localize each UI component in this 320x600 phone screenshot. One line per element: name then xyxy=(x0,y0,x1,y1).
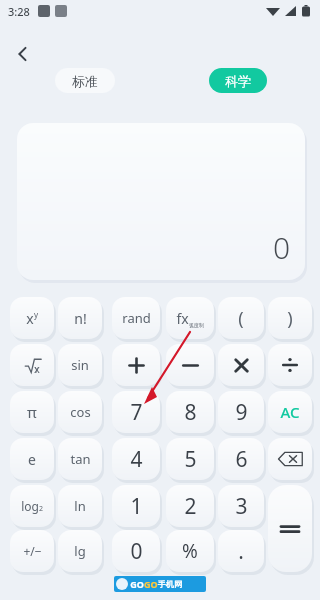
staticText: x xyxy=(34,361,40,376)
button[interactable]: cos xyxy=(58,391,102,433)
staticText: % xyxy=(182,538,198,564)
button[interactable]: Multiply xyxy=(218,344,264,386)
staticText: 科学 xyxy=(225,73,251,89)
button[interactable]: ( xyxy=(218,297,264,339)
staticText: 5 xyxy=(184,445,197,474)
button[interactable]: Divide xyxy=(268,344,312,386)
staticText: 2 xyxy=(39,504,44,514)
button[interactable]: log xyxy=(10,485,54,527)
staticText: n! xyxy=(74,309,87,328)
button[interactable]: e xyxy=(10,438,54,480)
button[interactable]: n! xyxy=(58,297,102,339)
button[interactable]: π xyxy=(10,391,54,433)
button[interactable]: . xyxy=(218,530,264,572)
button[interactable]: Plus xyxy=(112,344,160,386)
staticText: 7 xyxy=(130,398,143,427)
button[interactable]: 标准 xyxy=(55,68,115,93)
button[interactable]: Backspace xyxy=(268,438,312,480)
staticText: 9 xyxy=(235,398,248,427)
button[interactable]: 3 xyxy=(218,485,264,527)
staticText: ) xyxy=(287,306,293,331)
staticText: y xyxy=(34,309,39,320)
staticText: rand xyxy=(122,309,151,327)
staticText: 0 xyxy=(273,227,291,268)
staticText: 8 xyxy=(184,398,197,427)
staticText: 1 xyxy=(130,492,143,521)
staticText: 3 xyxy=(235,492,248,521)
button[interactable]: sin xyxy=(58,344,102,386)
staticText: GO xyxy=(144,578,158,590)
staticText: 手机网 xyxy=(158,579,182,589)
staticText: y xyxy=(35,364,39,374)
staticText: ( xyxy=(238,306,244,331)
button[interactable]: 6 xyxy=(218,438,264,480)
staticText: 6 xyxy=(235,445,248,474)
staticText: lg xyxy=(74,542,86,560)
button[interactable]: x xyxy=(10,297,54,339)
button[interactable]: 9 xyxy=(218,391,264,433)
button[interactable]: +/− xyxy=(10,530,54,572)
button[interactable]: 1 xyxy=(112,485,160,527)
button[interactable]: Minus xyxy=(166,344,214,386)
button[interactable]: y xyxy=(10,344,54,386)
button[interactable]: 5 xyxy=(166,438,214,480)
button[interactable]: % xyxy=(166,530,214,572)
staticText: π xyxy=(27,402,37,422)
button[interactable]: rand xyxy=(112,297,160,339)
staticText: 4 xyxy=(130,445,143,474)
button[interactable]: 科学 xyxy=(209,68,267,93)
button[interactable]: Equals xyxy=(268,485,312,572)
staticText: 弧度制 xyxy=(189,322,204,328)
staticText: sin xyxy=(71,356,89,374)
staticText: . xyxy=(238,537,244,566)
button[interactable]: ) xyxy=(268,297,312,339)
staticText: log xyxy=(21,498,39,514)
button[interactable]: 8 xyxy=(166,391,214,433)
button[interactable]: Back xyxy=(6,37,40,71)
button[interactable]: tan xyxy=(58,438,102,480)
staticText: 标准 xyxy=(72,73,98,89)
button[interactable]: 7 xyxy=(112,391,160,433)
button[interactable]: 4 xyxy=(112,438,160,480)
staticText: cos xyxy=(70,403,91,421)
button[interactable]: lg xyxy=(58,530,102,572)
staticText: fx xyxy=(176,309,189,328)
staticText: e xyxy=(28,450,36,469)
staticText: 2 xyxy=(184,492,197,521)
staticText: 3:28 xyxy=(8,4,30,19)
staticText: +/− xyxy=(23,543,42,559)
staticText: tan xyxy=(70,450,91,468)
staticText: x xyxy=(26,309,34,328)
button[interactable]: fx xyxy=(166,297,214,339)
button[interactable]: 0 xyxy=(112,530,160,572)
button[interactable]: AC xyxy=(268,391,312,433)
staticText: GO xyxy=(128,578,144,590)
button[interactable]: ln xyxy=(58,485,102,527)
button[interactable]: 2 xyxy=(166,485,214,527)
staticText: ln xyxy=(74,497,86,515)
staticText: AC xyxy=(280,402,300,422)
staticText: 0 xyxy=(130,537,143,566)
